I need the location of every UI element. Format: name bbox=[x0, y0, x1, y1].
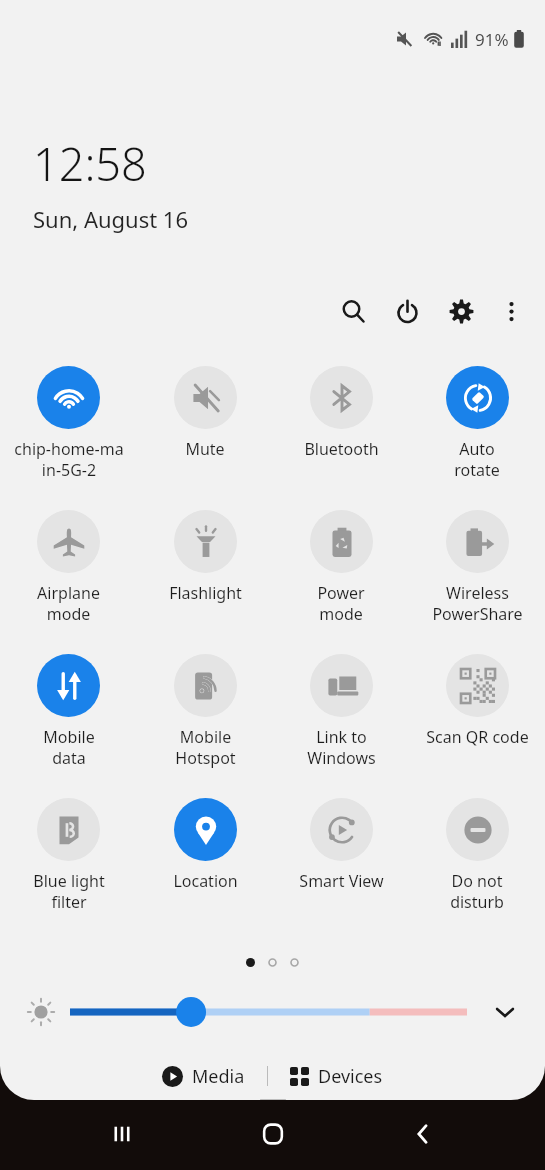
staticText: Airplane mode bbox=[37, 582, 100, 625]
button[interactable]: Link to Windows bbox=[273, 648, 409, 792]
staticText: Do not disturb bbox=[450, 870, 504, 913]
button[interactable]: Mute bbox=[137, 360, 273, 504]
staticText: chip-home-ma in-5G-2 bbox=[14, 438, 124, 481]
staticText: Scan QR code bbox=[426, 726, 529, 748]
staticText: Power mode bbox=[317, 582, 365, 625]
staticText: Blue light filter bbox=[33, 870, 105, 913]
button[interactable]: Media bbox=[154, 1060, 253, 1093]
button[interactable]: Settings bbox=[439, 289, 483, 333]
button[interactable]: Devices bbox=[282, 1060, 391, 1093]
staticText: Bluetooth bbox=[304, 438, 379, 460]
button[interactable]: Auto rotate bbox=[409, 360, 545, 504]
button[interactable]: More options bbox=[489, 289, 533, 333]
staticText: Devices bbox=[318, 1064, 383, 1089]
staticText: Wireless PowerShare bbox=[432, 582, 523, 625]
button[interactable]: Mobile Hotspot bbox=[137, 648, 273, 792]
button[interactable]: Do not disturb bbox=[409, 792, 545, 936]
staticText: Flashlight bbox=[169, 582, 242, 604]
staticText: Mute bbox=[185, 438, 225, 460]
staticText: 91% bbox=[475, 28, 509, 51]
staticText: Location bbox=[173, 870, 238, 892]
staticText: Smart View bbox=[299, 870, 384, 892]
button[interactable]: Wireless PowerShare bbox=[409, 504, 545, 648]
button[interactable]: Power off bbox=[385, 289, 429, 333]
button[interactable]: Recent apps bbox=[94, 1106, 150, 1162]
button[interactable]: Mobile data bbox=[0, 648, 137, 792]
staticText: Link to Windows bbox=[307, 726, 376, 769]
button[interactable]: Power mode bbox=[273, 504, 409, 648]
button[interactable]: Scan QR code bbox=[409, 648, 545, 792]
button[interactable]: Back bbox=[395, 1106, 451, 1162]
button[interactable]: Location bbox=[137, 792, 273, 936]
button[interactable]: Expand brightness options bbox=[485, 992, 525, 1032]
staticText: Auto rotate bbox=[454, 438, 500, 481]
staticText: Mobile data bbox=[43, 726, 95, 769]
button[interactable]: Home bbox=[245, 1106, 301, 1162]
staticText: 12:58 bbox=[33, 133, 147, 194]
button[interactable]: chip-home-ma in-5G-2 bbox=[0, 360, 137, 504]
staticText: Sun, August 16 bbox=[33, 204, 189, 234]
button[interactable]: Bluetooth bbox=[273, 360, 409, 504]
button[interactable]: Brightness bbox=[70, 994, 467, 1030]
staticText: Media bbox=[192, 1064, 245, 1089]
button[interactable]: Airplane mode bbox=[0, 504, 137, 648]
button[interactable]: Smart View bbox=[273, 792, 409, 936]
button[interactable]: Search bbox=[331, 289, 375, 333]
staticText: Mobile Hotspot bbox=[175, 726, 236, 769]
button[interactable]: Flashlight bbox=[137, 504, 273, 648]
button[interactable]: Blue light filter bbox=[0, 792, 137, 936]
